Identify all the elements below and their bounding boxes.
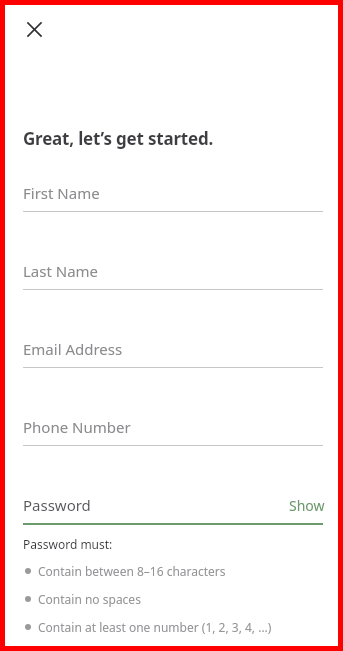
button[interactable]: Last Name xyxy=(5,261,338,290)
staticText: Password must: xyxy=(23,536,113,552)
button[interactable]: Show xyxy=(289,496,325,515)
staticText: Email Address xyxy=(23,339,123,359)
button[interactable]: Password xyxy=(5,495,338,525)
staticText: Password xyxy=(23,495,91,515)
button[interactable]: First Name xyxy=(5,183,338,212)
staticText: Phone Number xyxy=(23,417,131,437)
button[interactable]: Email Address xyxy=(5,339,338,368)
staticText: Contain at least one number (1, 2, 3, 4,… xyxy=(38,619,272,635)
staticText: Last Name xyxy=(23,261,99,281)
staticText: Contain between 8–16 characters xyxy=(38,563,226,579)
button[interactable]: Phone Number xyxy=(5,417,338,446)
staticText: Contain no spaces xyxy=(38,591,141,607)
staticText: Show xyxy=(289,496,325,515)
staticText: Great, let’s get started. xyxy=(23,127,214,150)
button[interactable]: Close xyxy=(14,9,54,49)
staticText: First Name xyxy=(23,183,100,203)
